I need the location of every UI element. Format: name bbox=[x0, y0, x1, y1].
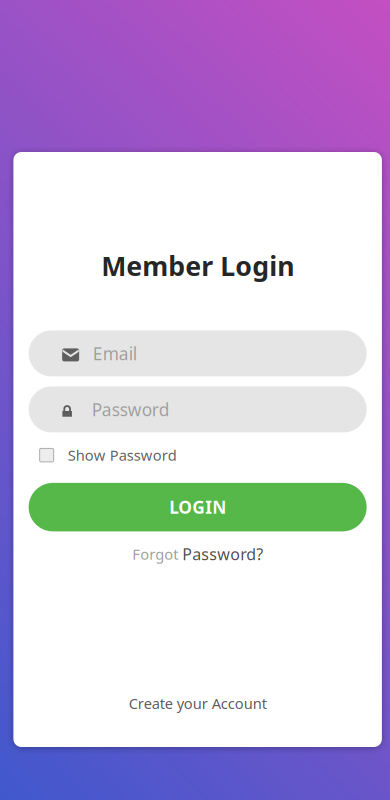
button[interactable]: Forgot bbox=[127, 538, 268, 570]
staticText: Password bbox=[92, 398, 170, 421]
button[interactable]: Email bbox=[29, 330, 367, 376]
button[interactable]: Password bbox=[29, 386, 367, 432]
staticText: LOGIN bbox=[169, 496, 226, 519]
staticText: Member Login bbox=[101, 248, 294, 283]
button[interactable]: LOGIN bbox=[29, 483, 367, 531]
staticText: Show Password bbox=[68, 445, 177, 465]
button[interactable]: Show Password bbox=[34, 439, 183, 471]
staticText: Email bbox=[93, 342, 137, 365]
staticText: Create your Account bbox=[129, 693, 267, 713]
staticText: Forgot bbox=[132, 544, 178, 564]
button[interactable]: Create your Account bbox=[121, 685, 275, 721]
staticText: Password? bbox=[182, 543, 263, 565]
